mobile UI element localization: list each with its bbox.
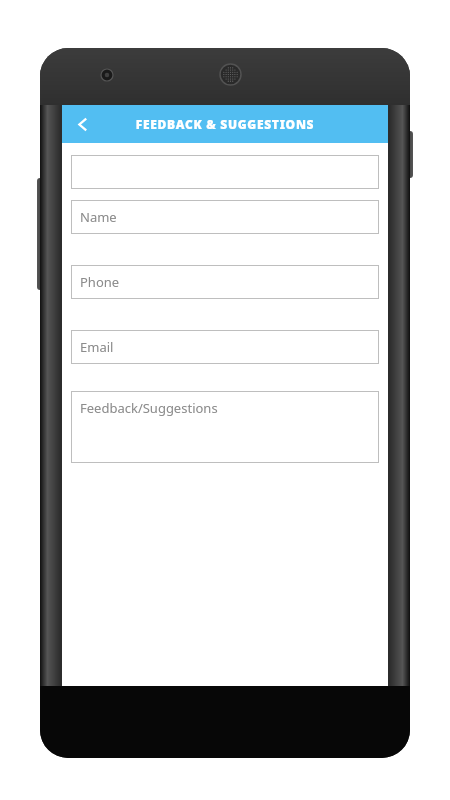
button[interactable]: Name <box>71 200 379 234</box>
button[interactable]: Phone <box>71 265 379 299</box>
staticText: Feedback/Suggestions <box>80 399 218 417</box>
staticText: Phone <box>80 273 120 291</box>
staticText: FEEDBACK & SUGGESTIONS <box>62 116 388 132</box>
button[interactable] <box>71 155 379 189</box>
button[interactable]: Email <box>71 330 379 364</box>
button[interactable]: Back <box>62 105 102 143</box>
staticText: Name <box>80 208 117 226</box>
button[interactable]: Feedback/Suggestions <box>71 391 379 463</box>
staticText: Email <box>80 338 114 356</box>
